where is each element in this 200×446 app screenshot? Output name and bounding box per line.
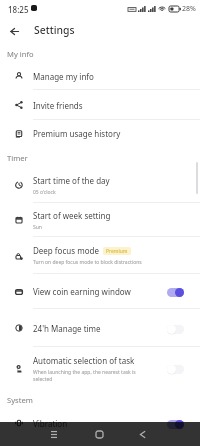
button[interactable]: Deep focus mode — [0, 237, 200, 274]
button[interactable]: Start of week setting — [0, 203, 200, 237]
staticText: 28% — [182, 4, 196, 14]
staticText: Timer — [7, 153, 28, 163]
staticText: My info — [7, 49, 34, 59]
button[interactable]: Back — [3, 20, 25, 42]
staticText: Settings — [34, 23, 75, 37]
staticText: System — [7, 395, 33, 405]
staticText: 24'h Manage time — [33, 323, 101, 334]
button[interactable]: Invite friends — [0, 90, 200, 120]
staticText: Vibration — [33, 418, 68, 429]
staticText: Automatic selection of task — [33, 355, 135, 366]
staticText: Invite friends — [33, 100, 83, 111]
staticText: Turn on deep focus mode to block distrac… — [33, 259, 142, 266]
staticText: View coin earning window — [33, 286, 131, 297]
staticText: Deep focus mode — [33, 245, 99, 256]
staticText: 18:25 — [8, 4, 29, 15]
button[interactable]: Toggle — [167, 365, 184, 374]
button[interactable]: 24'h Manage time — [0, 309, 200, 347]
button[interactable]: Start time of the day — [0, 167, 200, 203]
staticText: When launching the app, the nearest task… — [33, 369, 136, 382]
button[interactable]: Toggle — [167, 420, 184, 429]
staticText: 05 o'clock — [33, 189, 56, 196]
button[interactable]: Toggle — [167, 288, 184, 297]
button[interactable]: Back — [132, 424, 152, 444]
button[interactable]: View coin earning window — [0, 274, 200, 309]
staticText: Premium usage history — [33, 128, 121, 139]
button[interactable]: Vibration — [0, 409, 200, 437]
button[interactable]: Manage my info — [0, 62, 200, 90]
staticText: Start of week setting — [33, 210, 111, 221]
staticText: Manage my info — [33, 71, 94, 82]
staticText: Start time of the day — [33, 175, 110, 186]
button[interactable]: Premium usage history — [0, 119, 200, 148]
staticText: Sun — [33, 224, 42, 231]
button[interactable]: Toggle — [167, 325, 184, 334]
button[interactable]: Recent apps — [44, 424, 64, 444]
button[interactable]: Home — [89, 424, 109, 444]
button[interactable]: Automatic selection of task — [0, 347, 200, 390]
staticText: Premium — [106, 248, 128, 255]
